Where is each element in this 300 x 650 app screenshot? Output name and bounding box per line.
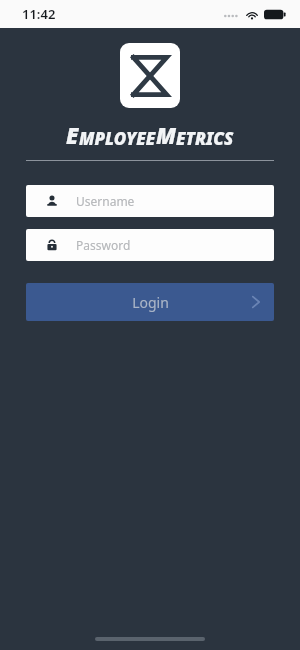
- button[interactable]: Login: [26, 283, 274, 321]
- staticText: 11:42: [22, 5, 56, 23]
- staticText: M: [156, 120, 176, 150]
- button[interactable]: Username: [26, 185, 274, 217]
- staticText: Username: [76, 193, 135, 209]
- button[interactable]: Password: [26, 229, 274, 261]
- staticText: MPLOYEE: [79, 127, 156, 150]
- staticText: E: [66, 120, 79, 150]
- staticText: ETRICS: [176, 127, 234, 150]
- staticText: Password: [76, 237, 131, 253]
- staticText: Login: [132, 293, 169, 312]
